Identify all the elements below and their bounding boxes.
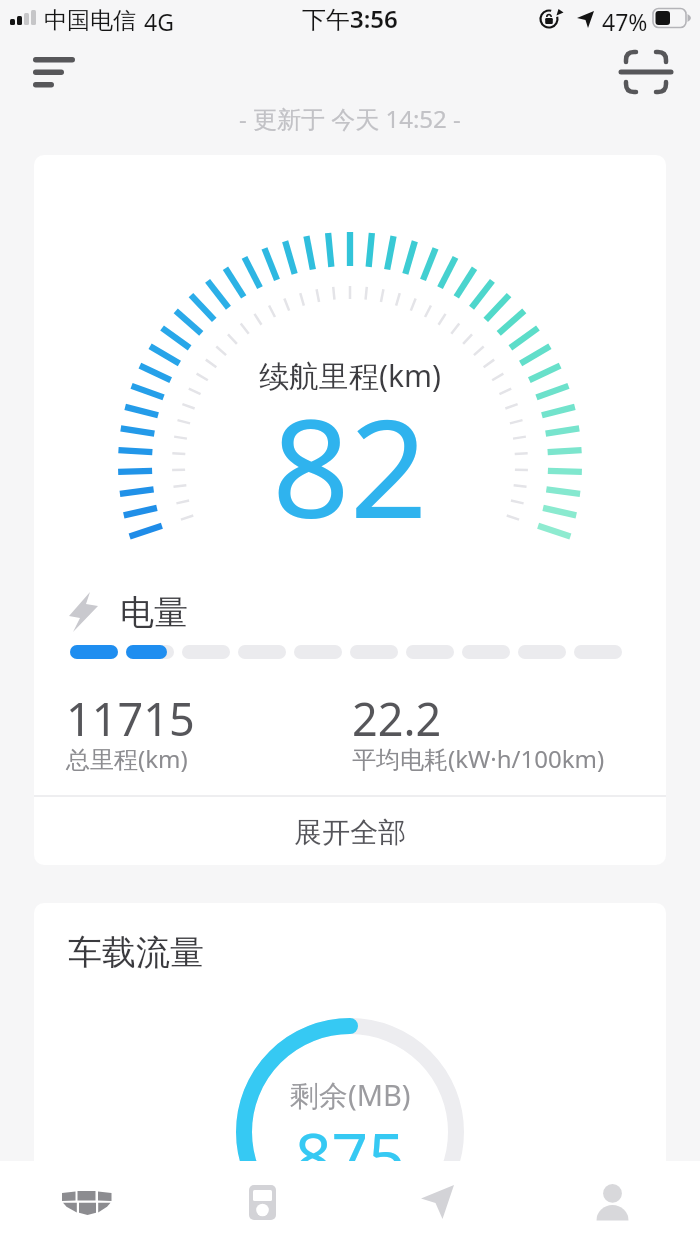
staticText: 11715	[66, 688, 195, 749]
staticText: 中国电信	[44, 6, 136, 35]
button[interactable]: 展开全部	[34, 800, 666, 865]
button[interactable]	[175, 1161, 350, 1244]
staticText: 22.2	[352, 688, 442, 749]
staticText: 车载流量	[68, 931, 204, 974]
button[interactable]	[0, 1161, 175, 1244]
staticText: 剩余(MB)	[290, 1075, 411, 1115]
staticText: - 更新于 今天 14:52 -	[239, 102, 461, 135]
staticText: 47%	[602, 6, 648, 37]
staticText: 下午3:56	[302, 2, 398, 35]
staticText: 续航里程(km)	[259, 355, 442, 396]
staticText: 82	[272, 373, 428, 558]
button[interactable]	[25, 47, 83, 95]
staticText: 4G	[144, 6, 174, 37]
button[interactable]	[617, 44, 675, 98]
staticText: 平均电耗(kW·h/100km)	[352, 742, 605, 775]
staticText: 875	[295, 1112, 405, 1199]
staticText: 电量	[120, 591, 188, 634]
staticText: 展开全部	[294, 815, 406, 850]
button[interactable]	[350, 1161, 525, 1244]
staticText: 总里程(km)	[66, 742, 188, 775]
button[interactable]	[525, 1161, 700, 1244]
